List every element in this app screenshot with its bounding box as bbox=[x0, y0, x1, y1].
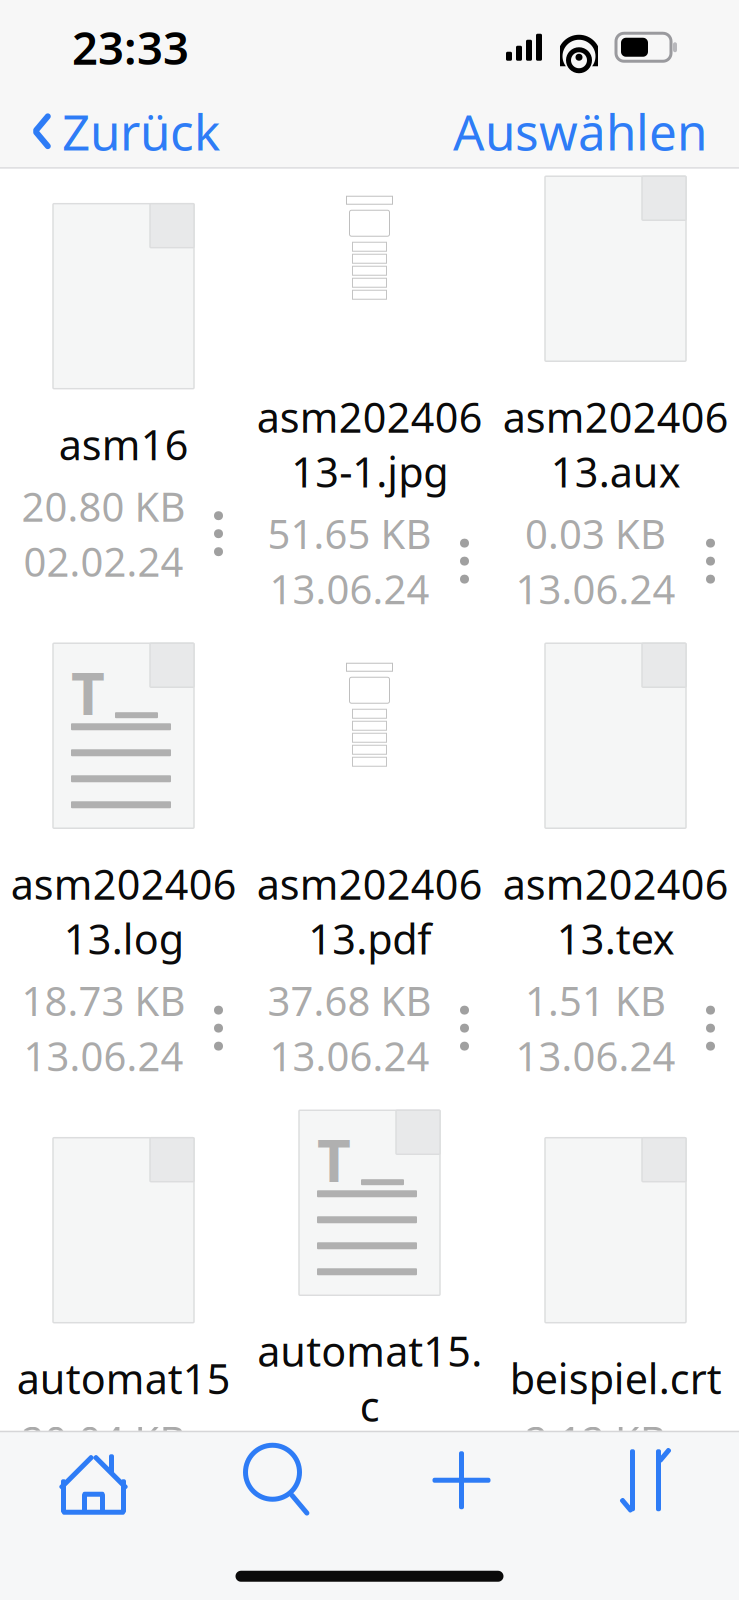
button[interactable]: Home bbox=[1, 1432, 185, 1528]
staticText: 13.06.24 bbox=[515, 562, 675, 615]
staticText: akjs bbox=[85, 0, 161, 42]
button[interactable]: beispiel.crt bbox=[492, 1138, 738, 1522]
staticText: automat15 bbox=[16, 1351, 230, 1406]
staticText: 20.80 KB bbox=[513, 50, 677, 103]
staticText: 13.06.24 bbox=[23, 1029, 183, 1082]
button[interactable]: automat15 bbox=[0, 1138, 246, 1522]
button[interactable]: T bbox=[246, 1110, 492, 1549]
button[interactable]: asm15 bbox=[492, 0, 738, 158]
staticText: 1.51 KB bbox=[525, 974, 666, 1027]
staticText: Zurück bbox=[62, 98, 220, 164]
staticText: T bbox=[71, 653, 105, 731]
staticText: Auswählen bbox=[453, 98, 707, 164]
staticText: asm20240613.pdf bbox=[256, 856, 482, 966]
button[interactable]: asm20240613-1.jpg bbox=[246, 176, 492, 615]
button[interactable]: asm20240613.aux bbox=[492, 176, 738, 615]
button[interactable]: Add bbox=[369, 1432, 553, 1528]
staticText: asm20240613.tex bbox=[502, 856, 728, 966]
button[interactable]: akjs bbox=[0, 0, 246, 158]
button[interactable]: Sort bbox=[553, 1432, 737, 1528]
staticText: asm16 bbox=[58, 417, 188, 472]
staticText: beispiel.crt bbox=[509, 1351, 721, 1406]
button[interactable]: allinks.sh bbox=[246, 0, 492, 158]
staticText: 0.03 KB bbox=[525, 507, 666, 560]
button[interactable]: Search bbox=[185, 1432, 369, 1528]
button[interactable]: asm20240613.tex bbox=[492, 643, 738, 1082]
button[interactable]: Auswählen bbox=[453, 88, 739, 174]
staticText: automat15.c bbox=[257, 1323, 482, 1433]
staticText: 07.05.24 bbox=[23, 105, 183, 158]
staticText: 8.91 KB bbox=[279, 1441, 420, 1494]
staticText: 20.04 KB bbox=[21, 1414, 185, 1467]
button[interactable]: asm20240613.pdf bbox=[246, 643, 492, 1082]
staticText: asm20240613.aux bbox=[502, 389, 728, 499]
staticText: 0.03 KB bbox=[33, 50, 174, 103]
staticText: 37.68 KB bbox=[267, 974, 431, 1027]
staticText: 11.06.24 bbox=[515, 1469, 675, 1522]
staticText: 51.65 KB bbox=[267, 507, 431, 560]
staticText: asm20240613.log bbox=[10, 856, 236, 966]
staticText: 13.06.24 bbox=[269, 1029, 429, 1082]
staticText: 23:33 bbox=[72, 17, 189, 77]
staticText: 02.02.24 bbox=[23, 535, 183, 588]
staticText: 13.06.24 bbox=[515, 1029, 675, 1082]
staticText: asm20240613-1.jpg bbox=[256, 389, 482, 499]
staticText: 13.02.24 bbox=[23, 1469, 183, 1522]
staticText: 18.73 KB bbox=[21, 974, 185, 1027]
button[interactable]: T bbox=[0, 643, 246, 1082]
staticText: 13.02.24 bbox=[269, 1496, 429, 1549]
staticText: 13.06.24 bbox=[269, 562, 429, 615]
staticText: T bbox=[317, 1120, 351, 1198]
button[interactable]: Zurück bbox=[0, 88, 220, 174]
staticText: 2.12 KB bbox=[525, 1414, 666, 1467]
button[interactable]: asm16 bbox=[0, 204, 246, 588]
staticText: 20.80 KB bbox=[21, 480, 185, 533]
staticText: 30.01.24 bbox=[515, 105, 675, 158]
staticText: asm15 bbox=[550, 0, 680, 42]
